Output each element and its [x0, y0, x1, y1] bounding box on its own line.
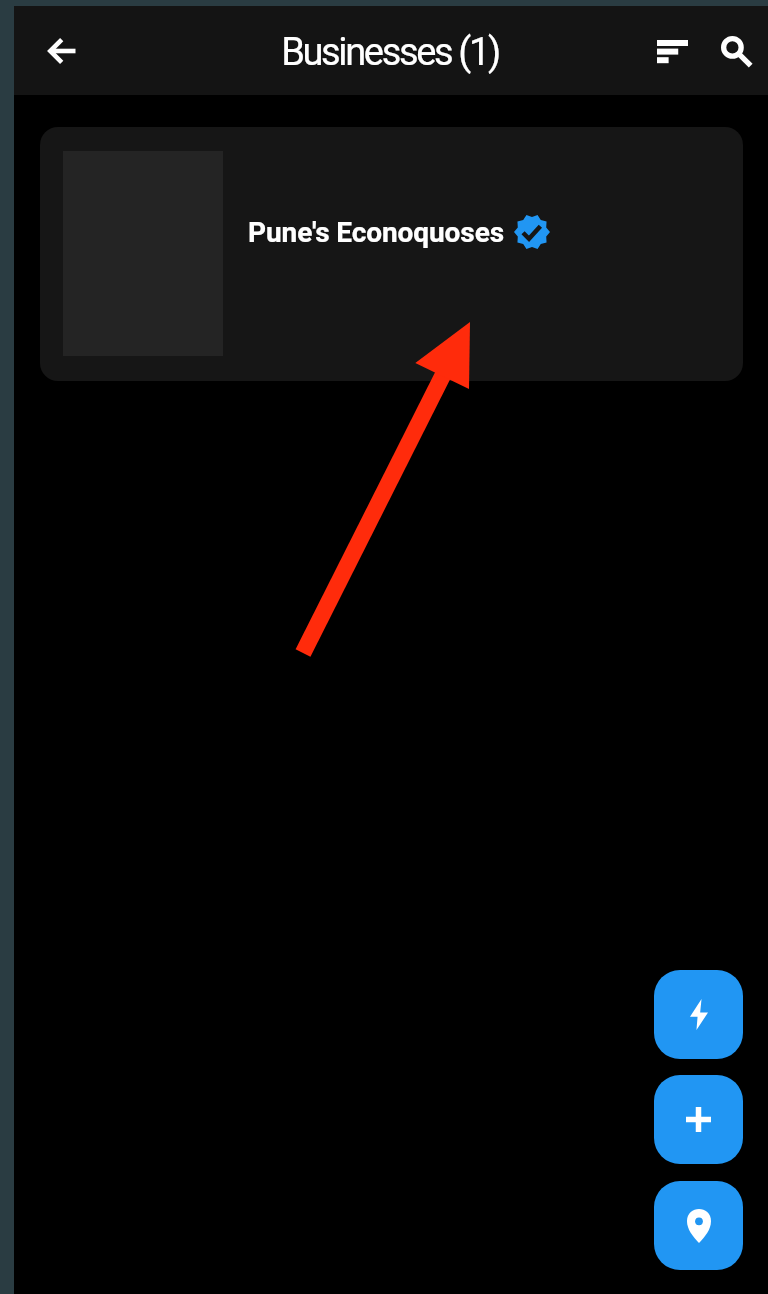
button[interactable]: Pune's Econoquoses	[40, 127, 743, 381]
button[interactable]: Quick action	[654, 970, 743, 1059]
button[interactable]: Sort	[644, 22, 701, 79]
staticText: Pune's Econoquoses	[248, 216, 504, 249]
button[interactable]: Show on map	[654, 1181, 743, 1270]
staticText: Businesses (1)	[281, 30, 499, 75]
button[interactable]: Search	[707, 22, 764, 79]
button[interactable]: Add business	[654, 1075, 743, 1164]
button[interactable]: Back	[32, 23, 88, 79]
